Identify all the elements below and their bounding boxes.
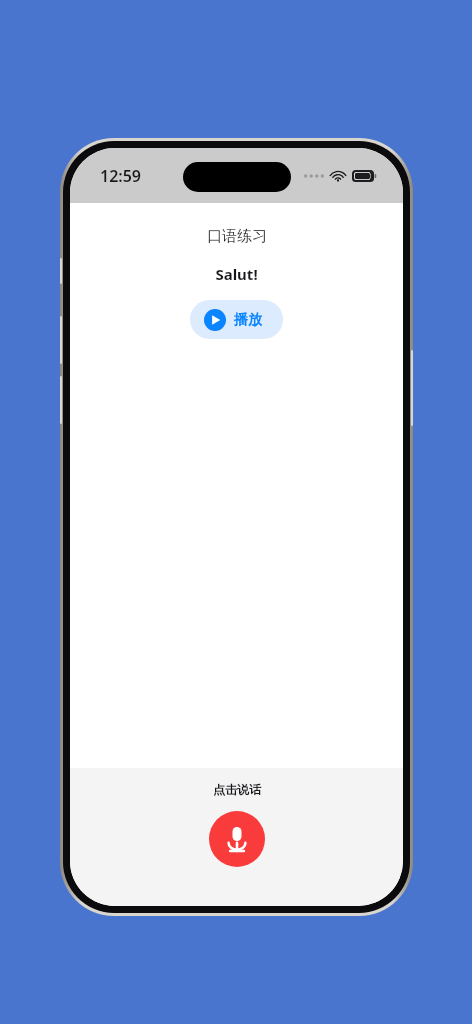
staticText: 口语练习: [207, 227, 267, 246]
staticText: 播放: [234, 311, 262, 329]
staticText: Salut!: [215, 264, 258, 284]
staticText: 点击说话: [213, 782, 261, 797]
button[interactable]: 播放: [190, 300, 283, 339]
button[interactable]: 点击说话 Record: [209, 811, 265, 867]
staticText: 12:59: [100, 165, 142, 187]
